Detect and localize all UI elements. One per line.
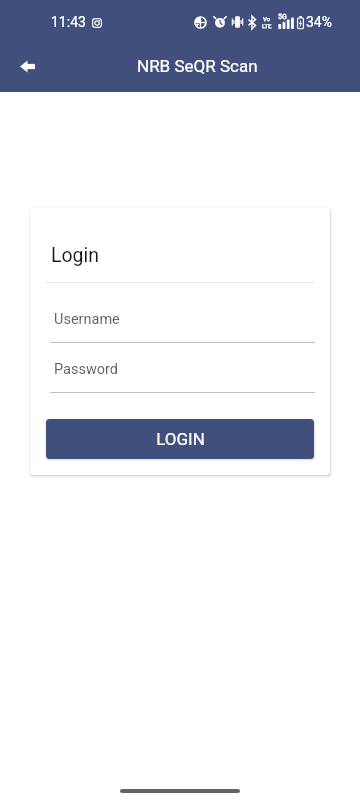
button[interactable]: Back [7,46,47,86]
button[interactable]: Password [50,350,315,393]
staticText: 5G [278,13,287,21]
staticText: Username [54,311,120,328]
staticText: 11:43 [51,14,86,30]
staticText: LOGIN [156,429,205,449]
button[interactable]: LOGIN [46,419,314,459]
staticText: LTE [262,22,272,29]
staticText: Vo [263,15,271,22]
staticText: Login [51,244,100,267]
staticText: NRB SeQR Scan [137,56,258,76]
button[interactable]: Username [50,300,315,343]
staticText: 34% [306,14,332,30]
staticText: Password [54,361,119,378]
